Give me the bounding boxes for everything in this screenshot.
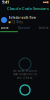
staticText: Claude Code Sessions [7, 6, 49, 11]
staticText: 9:41 [2, 0, 9, 5]
staticText: 12 files [12, 20, 23, 24]
staticText: Queued [18, 26, 30, 30]
staticText: ▪▪▮ [43, 0, 48, 3]
staticText: Active [1, 26, 9, 30]
staticText: Archive [39, 26, 49, 30]
staticText: Refactor auth flow [9, 16, 36, 19]
staticText: No active sessions. Start a new one to s… [12, 69, 37, 80]
